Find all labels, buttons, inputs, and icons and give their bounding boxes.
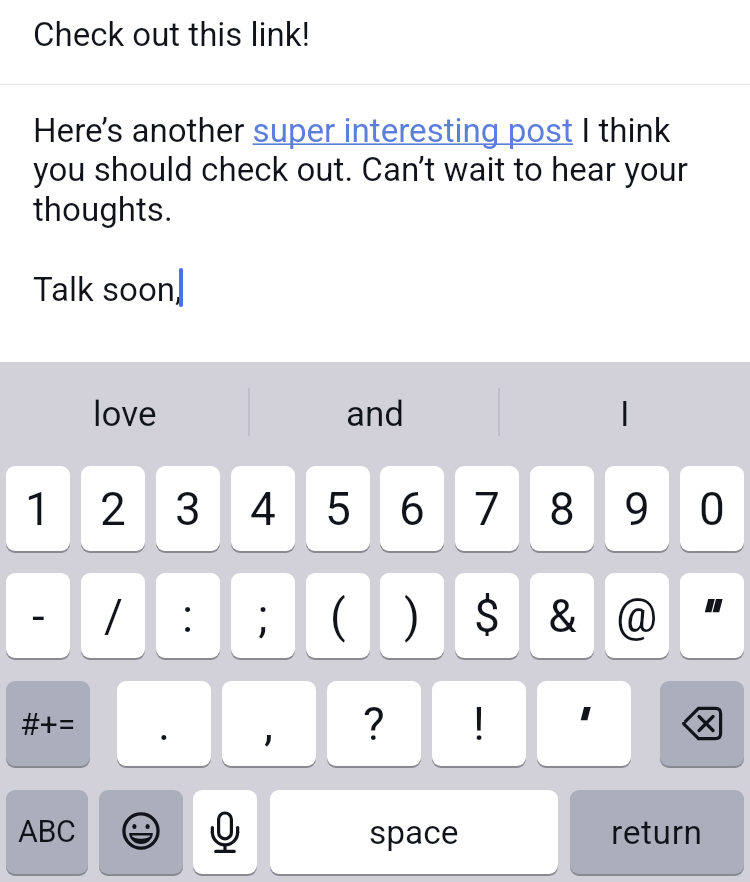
other: Voice input	[193, 790, 257, 874]
staticText: 8	[549, 482, 575, 536]
staticText: ABC	[18, 814, 76, 850]
button[interactable]: 8	[530, 466, 594, 551]
staticText: 5	[325, 482, 351, 536]
button[interactable]: 4	[231, 466, 295, 551]
button[interactable]: &	[530, 573, 594, 658]
button[interactable]: ;	[231, 573, 295, 658]
button[interactable]: Voice input	[193, 790, 257, 874]
staticText: @	[616, 589, 658, 643]
staticText: &	[548, 589, 577, 643]
staticText: love	[93, 394, 157, 435]
staticText: )	[404, 589, 421, 643]
button[interactable]: !	[432, 681, 526, 766]
staticText: Check out this link!	[33, 15, 311, 54]
button[interactable]: 3	[156, 466, 220, 551]
staticText: 0	[699, 482, 725, 536]
staticText: I	[620, 394, 630, 435]
staticText: space	[369, 813, 459, 852]
staticText: 9	[624, 482, 650, 536]
staticText: :	[182, 589, 194, 643]
staticText: Here’s another super interesting post I …	[33, 111, 702, 309]
button[interactable]: )	[380, 573, 444, 658]
staticText: and	[346, 394, 405, 435]
button[interactable]: love	[0, 362, 250, 466]
button[interactable]: (	[306, 573, 370, 658]
staticText: !	[473, 697, 485, 751]
staticText: /	[104, 589, 123, 643]
button[interactable]: 7	[455, 466, 519, 551]
button[interactable]: 0	[680, 466, 744, 551]
staticText: 3	[175, 482, 201, 536]
staticText: -	[32, 589, 45, 643]
button[interactable]: space	[270, 790, 558, 874]
staticText: ;	[258, 589, 268, 643]
button[interactable]: :	[156, 573, 220, 658]
button[interactable]: ABC	[6, 790, 88, 874]
button[interactable]: -	[6, 573, 70, 658]
staticText: 7	[474, 482, 500, 536]
button[interactable]: 2	[81, 466, 145, 551]
staticText: #+=	[20, 705, 76, 743]
button[interactable]: 5	[306, 466, 370, 551]
button[interactable]: /	[81, 573, 145, 658]
button[interactable]: Backspace	[660, 681, 744, 766]
button[interactable]	[680, 573, 744, 658]
staticText: ?	[363, 697, 385, 751]
other: Backspace	[660, 681, 744, 766]
button[interactable]: ?	[327, 681, 421, 766]
button[interactable]: and	[250, 362, 500, 466]
button[interactable]: @	[605, 573, 669, 658]
button[interactable]: I	[500, 362, 750, 466]
button[interactable]: .	[117, 681, 211, 766]
button[interactable]: 1	[6, 466, 70, 551]
staticText: 2	[100, 482, 126, 536]
staticText: return	[611, 813, 703, 852]
staticText: .	[158, 697, 171, 751]
staticText: 4	[250, 482, 276, 536]
staticText: (	[330, 589, 346, 643]
staticText: 6	[399, 482, 425, 536]
button[interactable]: $	[455, 573, 519, 658]
other: Emoji	[99, 790, 183, 874]
button[interactable]: ,	[222, 681, 316, 766]
button[interactable]: 9	[605, 466, 669, 551]
button[interactable]: 6	[380, 466, 444, 551]
staticText: ,	[264, 697, 274, 751]
button[interactable]: #+=	[6, 681, 90, 766]
button[interactable]: return	[570, 790, 744, 874]
button[interactable]	[537, 681, 631, 766]
button[interactable]: Emoji	[99, 790, 183, 874]
staticText: $	[474, 589, 500, 643]
staticText: 1	[25, 482, 51, 536]
